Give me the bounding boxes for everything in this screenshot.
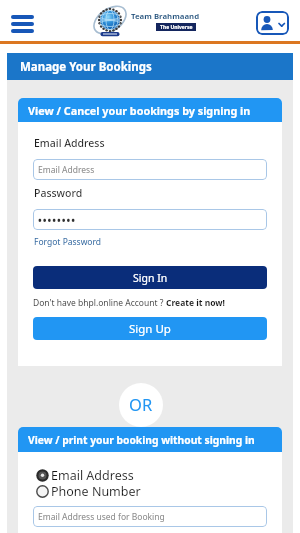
staticText: Don't have bhpl.online Account ?	[33, 297, 166, 309]
staticText: Email Address	[51, 467, 134, 482]
staticText: Email Address used for Booking	[38, 511, 165, 523]
button[interactable]: Email Address	[33, 159, 267, 180]
staticText: Email Address	[34, 136, 105, 150]
staticText: Email Address	[38, 164, 95, 176]
staticText: Create it now!	[166, 297, 226, 309]
button[interactable]: Create it now!	[166, 297, 226, 309]
staticText: Team Brahmaand	[131, 11, 200, 22]
staticText: Forgot Password	[34, 236, 102, 248]
staticText: Sign In	[133, 271, 168, 285]
button[interactable]	[256, 11, 289, 35]
staticText: Manage Your Bookings	[20, 59, 152, 75]
button[interactable]: ••••••••	[33, 209, 267, 230]
staticText: Password	[34, 186, 83, 200]
button[interactable]: Email Address	[36, 468, 166, 483]
button[interactable]	[11, 15, 34, 34]
staticText: Phone Number	[51, 483, 141, 498]
staticText: View / print your booking without signin…	[28, 433, 255, 447]
button[interactable]: Email Address used for Booking	[33, 506, 267, 527]
staticText: Sign Up	[129, 321, 171, 337]
button[interactable]: Phone Number	[36, 484, 166, 499]
staticText: The Universe	[160, 24, 193, 31]
staticText: ••••••••	[38, 213, 77, 227]
button[interactable]: Manage Your Bookings	[7, 53, 293, 80]
button[interactable]: Sign In	[33, 266, 267, 289]
button[interactable]: Sign Up	[33, 317, 267, 340]
staticText: OR	[129, 393, 153, 415]
staticText: View / Cancel your bookings by signing i…	[28, 103, 251, 118]
button[interactable]: Forgot Password	[34, 236, 102, 248]
